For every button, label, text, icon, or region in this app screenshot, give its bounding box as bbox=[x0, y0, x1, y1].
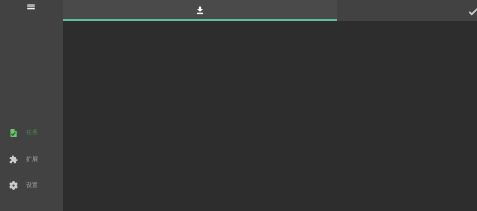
button[interactable]: Downloads tab bbox=[63, 0, 337, 21]
staticText: 任务 bbox=[26, 128, 38, 136]
button[interactable]: 扩展 bbox=[0, 148, 63, 170]
staticText: 设置 bbox=[26, 181, 38, 189]
staticText: 扩展 bbox=[26, 155, 38, 163]
button[interactable]: Menu bbox=[22, 0, 41, 19]
button[interactable]: 设置 bbox=[0, 174, 63, 196]
button[interactable]: Confirm bbox=[459, 1, 477, 21]
button[interactable]: 任务 bbox=[0, 121, 63, 143]
